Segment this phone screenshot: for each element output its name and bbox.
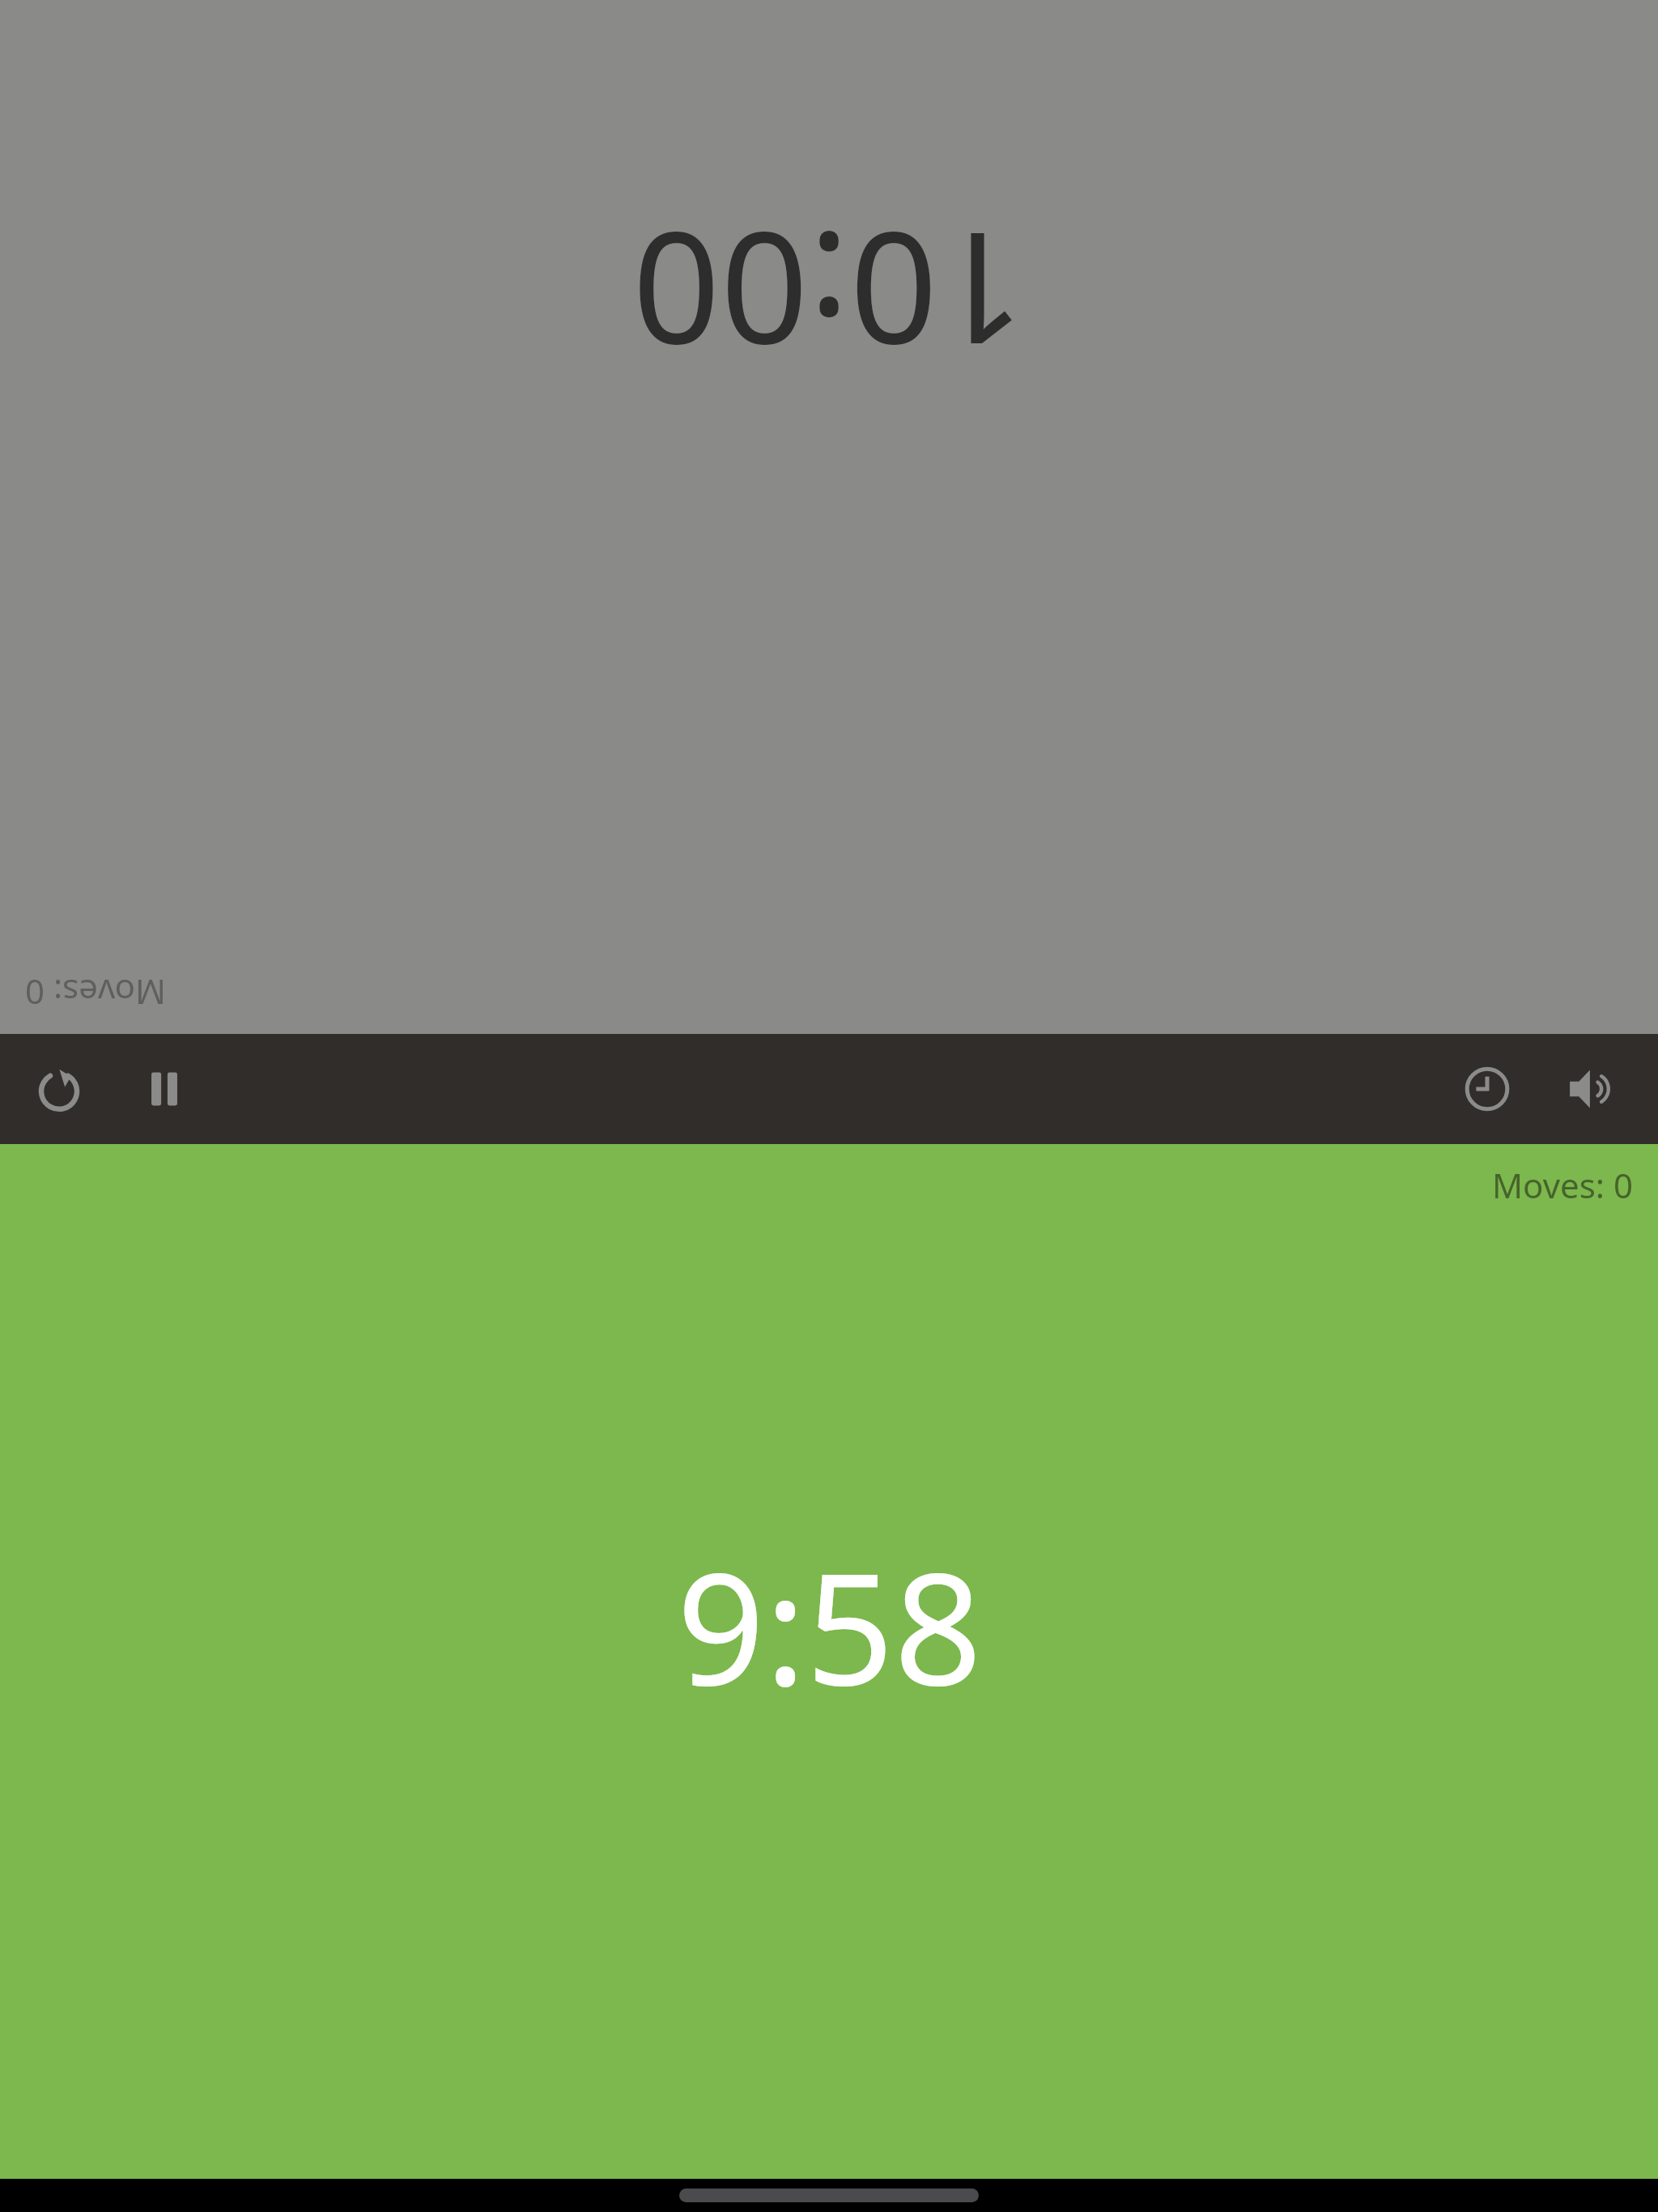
button[interactable]: Moves: 0 <box>0 1144 1658 2179</box>
staticText: 9:58 <box>677 1521 982 1730</box>
button[interactable]: Time settings <box>1435 1034 1540 1144</box>
staticText: Moves: 0 <box>1492 1162 1634 1208</box>
button[interactable]: Pause <box>112 1034 217 1144</box>
button[interactable]: Sound <box>1540 1034 1645 1144</box>
staticText: 10:00 <box>632 188 1026 398</box>
staticText: Moves: 0 <box>24 970 166 1016</box>
button[interactable]: Restart <box>6 1034 112 1144</box>
button[interactable]: Moves: 0 <box>0 0 1658 1034</box>
